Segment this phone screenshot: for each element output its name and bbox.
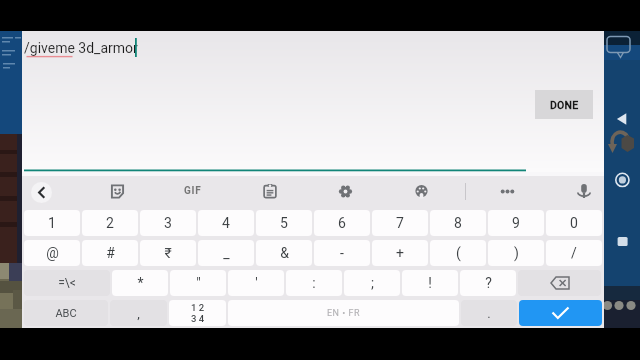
button[interactable]: 1	[24, 210, 80, 236]
button[interactable]: ,	[110, 300, 167, 326]
button[interactable]: Backspace	[518, 270, 601, 296]
staticText: -	[340, 245, 344, 261]
button[interactable]: Emoji	[111, 185, 124, 198]
button[interactable]: #	[82, 240, 138, 266]
staticText: '	[255, 275, 258, 291]
button[interactable]: GIF	[180, 183, 206, 199]
staticText: :	[312, 275, 316, 291]
button[interactable]: (	[430, 240, 486, 266]
staticText: 4	[222, 215, 230, 231]
staticText: GIF	[184, 185, 202, 197]
button[interactable]: .	[461, 300, 517, 326]
button[interactable]: 7	[372, 210, 428, 236]
staticText: 1	[48, 215, 56, 231]
staticText: &	[280, 245, 289, 261]
button[interactable]: /	[546, 240, 602, 266]
button[interactable]: Theme	[415, 185, 428, 198]
button[interactable]: !	[402, 270, 458, 296]
button[interactable]: =\<	[24, 270, 110, 296]
staticText: 0	[570, 215, 578, 231]
button[interactable]: ABC	[24, 300, 108, 326]
staticText: 5	[280, 215, 288, 231]
button[interactable]: 9	[488, 210, 544, 236]
button[interactable]: @	[24, 240, 80, 266]
button[interactable]: 4	[198, 210, 254, 236]
staticText: 3 4	[191, 313, 205, 324]
button[interactable]: 0	[546, 210, 602, 236]
button[interactable]: ;	[344, 270, 400, 296]
staticText: EN • FR	[327, 308, 361, 319]
staticText: !	[428, 275, 432, 291]
button[interactable]: ₹	[140, 240, 196, 266]
button[interactable]: 5	[256, 210, 312, 236]
staticText: @	[46, 245, 59, 261]
button[interactable]: ?	[460, 270, 516, 296]
staticText: DONE	[550, 99, 579, 111]
button[interactable]: 6	[314, 210, 370, 236]
button[interactable]: 8	[430, 210, 486, 236]
staticText: 7	[396, 215, 404, 231]
staticText: =\<	[58, 276, 76, 290]
staticText: 1 2	[191, 302, 205, 313]
staticText: ?	[485, 275, 492, 291]
staticText: /	[571, 245, 577, 261]
button[interactable]: 2	[82, 210, 138, 236]
staticText: 8	[454, 215, 462, 231]
button[interactable]: +	[372, 240, 428, 266]
staticText: #	[106, 245, 115, 261]
button[interactable]: More options	[501, 185, 514, 198]
staticText: ABC	[55, 307, 77, 320]
button[interactable]: Enter	[519, 300, 602, 326]
button[interactable]: :	[286, 270, 342, 296]
staticText: 3	[164, 215, 172, 231]
staticText: "	[196, 275, 201, 291]
staticText: *	[137, 275, 144, 291]
button[interactable]: *	[112, 270, 168, 296]
button[interactable]: _	[198, 240, 254, 266]
staticText: ;	[371, 275, 374, 291]
staticText: 6	[338, 215, 346, 231]
button[interactable]: '	[228, 270, 284, 296]
button[interactable]: Voice input	[577, 184, 591, 198]
staticText: /giveme 3d_armor	[24, 40, 138, 56]
button[interactable]: Back	[31, 182, 52, 203]
button[interactable]: "	[170, 270, 226, 296]
staticText: )	[514, 245, 519, 261]
button[interactable]: )	[488, 240, 544, 266]
button[interactable]: EN • FR	[228, 300, 459, 326]
button[interactable]: Numbers	[169, 300, 226, 326]
button[interactable]: Clipboard	[263, 184, 277, 198]
button[interactable]: DONE	[535, 90, 593, 119]
staticText: (	[456, 245, 461, 261]
staticText: .	[487, 306, 491, 321]
staticText: ,	[137, 306, 140, 321]
staticText: _	[223, 245, 230, 261]
staticText: 9	[512, 215, 520, 231]
button[interactable]: -	[314, 240, 370, 266]
button[interactable]: Settings	[339, 185, 352, 198]
staticText: +	[396, 245, 404, 261]
staticText: ₹	[164, 245, 172, 261]
button[interactable]: 3	[140, 210, 196, 236]
button[interactable]: &	[256, 240, 312, 266]
staticText: 2	[106, 215, 114, 231]
